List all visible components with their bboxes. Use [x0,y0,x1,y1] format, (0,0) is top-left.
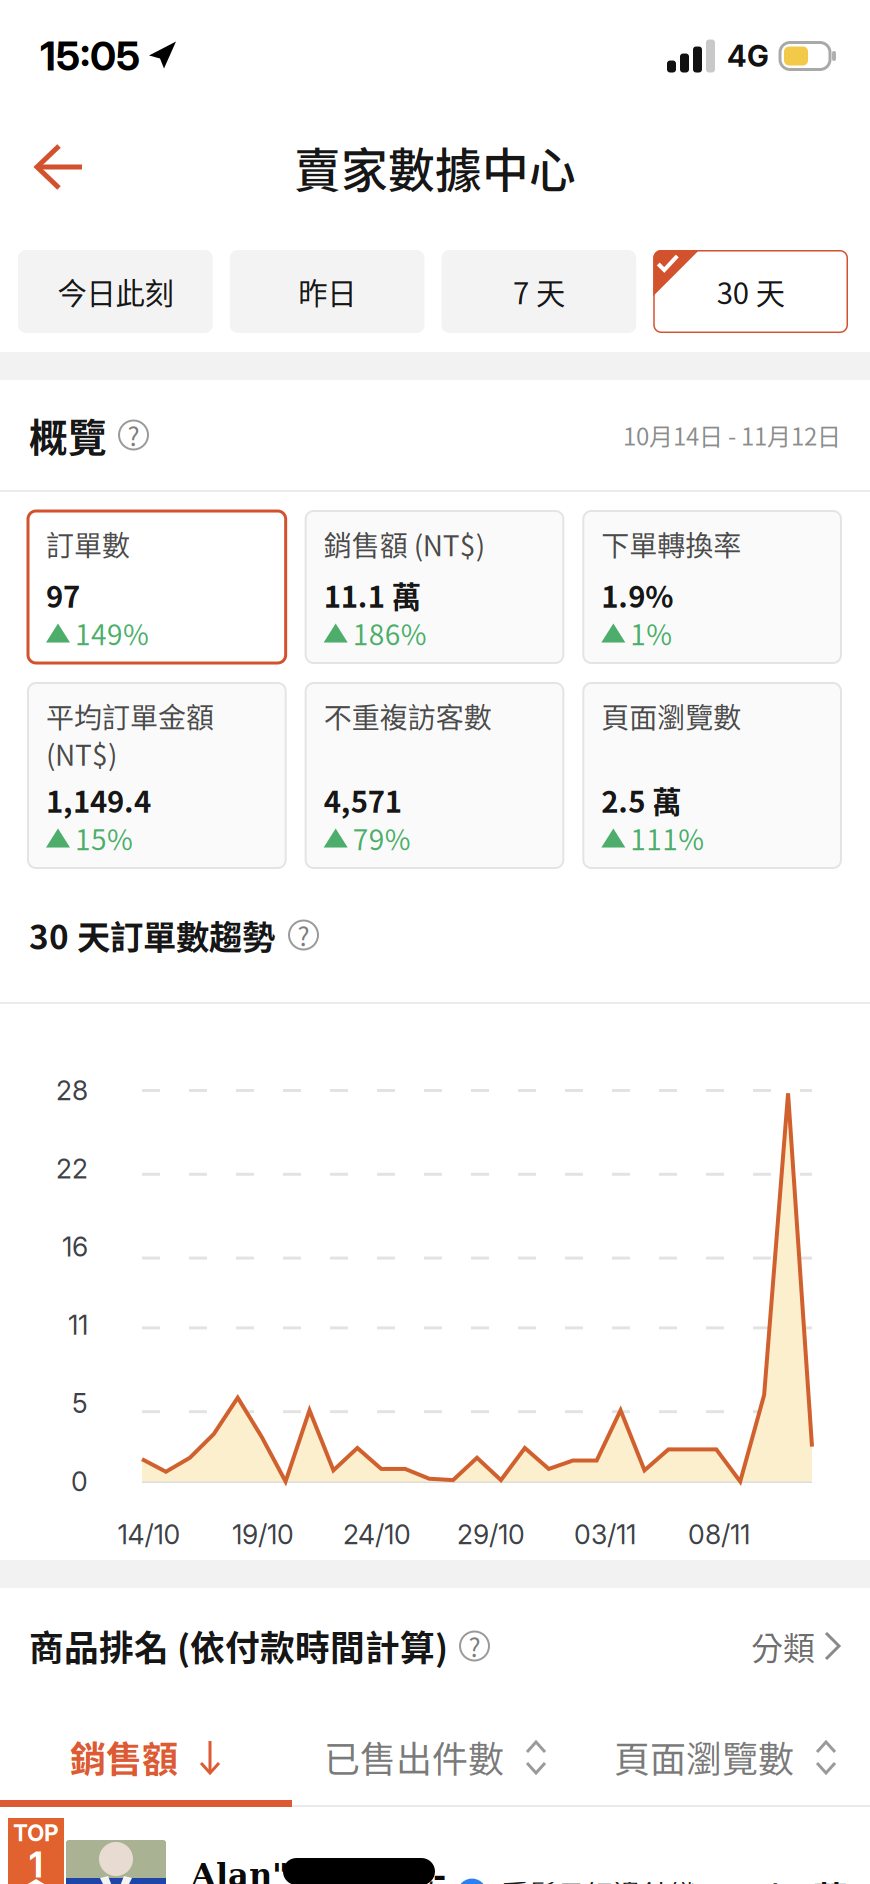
staticText: TOP [13,1819,59,1847]
staticText: 0 [71,1465,88,1498]
staticText: ? [127,416,139,453]
staticText: 商品排名 (依付款時間計算) [29,1621,448,1671]
staticText: 4G [727,38,769,74]
staticText: 2.5 萬 [601,779,681,821]
button[interactable]: 頁面瀏覽數 [580,1707,870,1807]
button[interactable]: 平均訂單金額 [28,683,286,868]
staticText: 15% [75,818,133,858]
staticText: 4,571 [324,779,402,821]
staticText: 08/11 [688,1518,750,1551]
button[interactable]: 不重複訪客數 [306,683,563,868]
staticText: 22 [56,1153,88,1185]
staticText: 1 [29,1844,43,1884]
button[interactable]: 訂單數 [28,511,286,663]
staticText: 7 天 [513,270,565,313]
button[interactable]: 昨日 [230,250,425,333]
staticText: 1.9% [601,574,673,616]
button[interactable]: 頁面瀏覽數 [583,683,841,868]
staticText: 不重複訪客數 [324,696,492,736]
button[interactable]: Alan"KoreaStore [0,1810,870,1884]
staticText: 24/10 [343,1518,411,1551]
staticText: 30 天訂單數趨勢 [29,911,275,959]
staticText: 5 [72,1387,88,1419]
staticText: 銷售額 [70,1731,178,1783]
button[interactable]: 下單轉換率 [583,511,841,663]
staticText: 1% [630,613,672,653]
staticText: 下單轉換率 [601,524,741,564]
staticText: 昨日 [298,270,356,313]
button[interactable]: 今日此刻 [18,250,213,333]
staticText: 186% [353,613,427,653]
button[interactable]: Back [20,121,98,213]
staticText: 11.1 萬 [324,574,421,616]
staticText: 29/10 [457,1518,525,1551]
staticText: ? [468,1627,480,1664]
button[interactable]: 7 天 [441,250,636,333]
button[interactable]: 銷售額 (NT$) [306,511,563,663]
staticText: 1,149.4 [46,779,151,821]
staticText: 分類 [751,1623,815,1669]
button[interactable]: 已售出件數 [290,1707,580,1807]
staticText: 28 [56,1074,88,1107]
staticText: 訂單數 [46,524,130,564]
staticText: 30 天 [717,270,785,313]
staticText: 賣家數據中心 [294,133,576,201]
staticText: 111% [630,818,704,858]
staticText: Alan"KoreaStore [191,1856,446,1884]
button[interactable]: 30 天 [653,250,848,333]
staticText: 15:05 [40,32,140,80]
staticText: 平均訂單金額 [46,696,214,736]
staticText: 14/10 [117,1518,180,1551]
staticText: 已售出件數 [324,1731,504,1783]
staticText: 覓鬆日紉邊針織 [501,1873,697,1884]
staticText: (NT$) [46,733,117,774]
staticText: 頁面瀏覽數 [614,1731,794,1783]
staticText: 79% [353,818,411,858]
button[interactable]: 分類 [751,1603,841,1689]
staticText: 149% [75,613,149,653]
staticText: ? [297,916,309,953]
staticText: 03/11 [574,1518,636,1551]
button[interactable]: 銷售額 [0,1707,290,1807]
staticText: 10月14日 - 11月12日 [623,418,841,452]
staticText: 今日此刻 [57,270,173,313]
staticText: 97 [46,574,80,616]
staticText: 銷售額 (NT$) [324,524,485,564]
staticText: M [462,1881,482,1884]
staticText: 頁面瀏覽數 [601,696,741,736]
staticText: NT$2 萬 [717,1872,848,1884]
staticText: 16 [62,1231,88,1263]
staticText: 概覽 [29,407,107,463]
staticText: 19/10 [232,1518,294,1551]
staticText: 11 [68,1309,88,1341]
